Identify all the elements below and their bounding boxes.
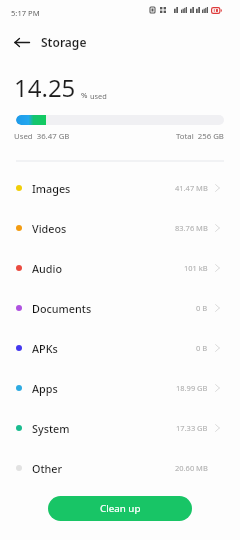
button[interactable]: System (0, 408, 240, 448)
button[interactable]: Images (0, 168, 240, 208)
staticText: % (81, 90, 88, 101)
staticText: Other (32, 461, 63, 476)
staticText: 20.60 MB (175, 463, 208, 473)
button[interactable]: Audio (0, 248, 240, 288)
button[interactable]: Videos (0, 208, 240, 248)
staticText: 83.76 MB (175, 223, 208, 233)
staticText: 101 kB (184, 263, 208, 273)
button[interactable]: Other (0, 448, 240, 488)
staticText: Total 256 GB (176, 131, 224, 142)
staticText: Storage (41, 34, 87, 50)
staticText: 41.47 MB (175, 183, 208, 193)
staticText: Used 36.47 GB (14, 131, 70, 142)
button[interactable]: Apps (0, 368, 240, 408)
staticText: Images (32, 181, 71, 196)
button[interactable]: Back (8, 28, 36, 56)
staticText: System (32, 421, 70, 436)
staticText: Videos (32, 221, 67, 236)
staticText: Clean up (100, 502, 141, 515)
staticText: Documents (32, 301, 92, 316)
staticText: APKs (32, 341, 58, 356)
staticText: 0 B (196, 343, 208, 353)
staticText: used (90, 91, 107, 101)
staticText: Audio (32, 261, 63, 276)
staticText: 17.33 GB (176, 423, 208, 433)
staticText: 14.25 (14, 71, 76, 104)
button[interactable]: Documents (0, 288, 240, 328)
staticText: Apps (32, 381, 58, 396)
button[interactable]: APKs (0, 328, 240, 368)
button[interactable]: Clean up (48, 496, 192, 521)
staticText: 18.99 GB (176, 383, 208, 393)
staticText: 0 B (196, 303, 208, 313)
staticText: 5:17 PM (11, 8, 40, 18)
